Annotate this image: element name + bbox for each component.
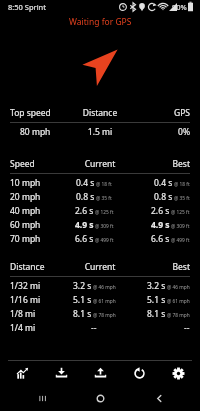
staticText: @ 499 ft [171,237,190,244]
staticText: 80 mph [20,126,70,138]
staticText: 5.1 s [73,294,92,306]
staticText: 0.4 s [76,177,95,189]
button[interactable]: Import [44,362,78,384]
staticText: 1/8 mi [10,308,60,320]
staticText: 5.1 s [147,294,166,306]
staticText: @ 18 ft [174,181,190,188]
staticText: @ 125 ft [171,209,190,216]
staticText: 1/4 mi [10,322,60,334]
staticText: 0.8 s [154,191,173,203]
staticText: @ 46 mph [167,284,190,291]
button[interactable]: 1/8 mi [0,307,200,321]
button[interactable]: Statistics [5,362,39,384]
button[interactable]: Settings [161,362,195,384]
staticText: 1.5 mi [70,126,130,138]
staticText: 0% [130,126,190,138]
staticText: 40 mph [10,205,60,217]
staticText: @ 46 mph [93,284,116,291]
staticText: 6.6 s [151,233,170,245]
staticText: Top speed [10,107,70,119]
staticText: @ 309 ft [95,223,114,230]
staticText: @ 35 ft [96,195,112,202]
staticText: Distance [10,261,70,273]
staticText: Waiting for GPS [69,16,132,28]
staticText: Current [70,261,130,273]
staticText: 4.9 s [151,219,170,231]
button[interactable]: Reset [122,362,156,384]
staticText: 2.6 s [151,205,170,217]
staticText: -- [184,322,190,334]
staticText: 1/32 mi [10,280,60,292]
staticText: 10 mph [10,177,60,189]
button[interactable]: Export [83,362,117,384]
staticText: @ 61 mph [93,298,116,305]
staticText: 0.4 s [154,177,173,189]
staticText: 70 mph [10,233,60,245]
staticText: 2.6 s [75,205,94,217]
staticText: 20 mph [10,191,60,203]
button[interactable]: 80 mph [0,123,200,141]
button[interactable]: Home [83,386,117,410]
button[interactable]: Recents [25,386,59,410]
staticText: @ 35 ft [174,195,190,202]
staticText: 3.2 s [73,280,92,292]
staticText: @ 125 ft [95,209,114,216]
staticText: 1/16 mi [10,294,60,306]
staticText: @ 309 ft [171,223,190,230]
staticText: 8:50 Sprint [8,2,46,12]
staticText: 3.2 s [147,280,166,292]
button[interactable]: 20 mph [0,190,200,204]
staticText: Best [130,158,190,170]
button[interactable]: 1/32 mi [0,279,200,293]
staticText: 90% [172,2,187,12]
button[interactable]: 10 mph [0,176,200,190]
button[interactable]: 60 mph [0,218,200,232]
staticText: 8.1 s [147,308,166,320]
staticText: @ 499 ft [95,237,114,244]
staticText: Current [70,158,130,170]
staticText: 0.8 s [76,191,95,203]
staticText: Speed [10,158,70,170]
staticText: @ 61 mph [167,298,190,305]
staticText: @ 78 mph [167,312,190,319]
staticText: Distance [70,107,130,119]
button[interactable]: 40 mph [0,204,200,218]
button[interactable]: 1/4 mi [0,321,200,335]
staticText: 60 mph [10,219,60,231]
staticText: GPS [130,107,190,119]
staticText: Best [130,261,190,273]
staticText: 8.1 s [73,308,92,320]
staticText: -- [91,322,97,334]
staticText: 4.9 s [75,219,94,231]
staticText: 6.6 s [75,233,94,245]
button[interactable]: Back [142,386,176,410]
button[interactable]: 1/16 mi [0,293,200,307]
button[interactable]: 70 mph [0,232,200,246]
staticText: @ 18 ft [96,181,112,188]
staticText: @ 78 mph [93,312,116,319]
